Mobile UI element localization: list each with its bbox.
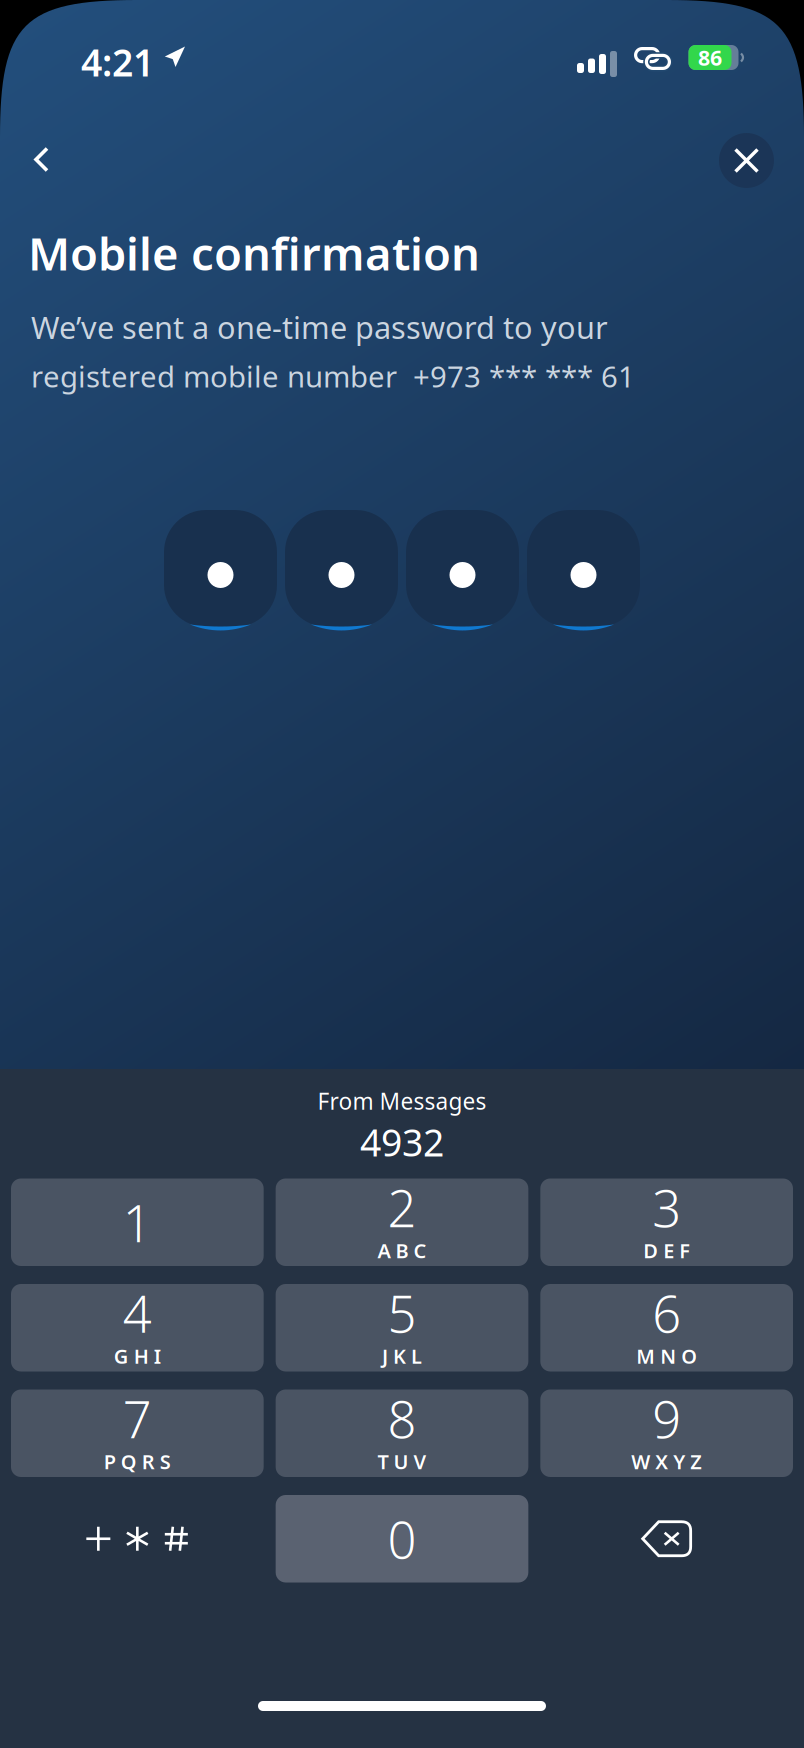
button[interactable]: 0 (276, 1495, 528, 1582)
button[interactable]: 2 (276, 1178, 528, 1266)
button[interactable]: Close (719, 133, 774, 188)
staticText: 4 (123, 1279, 152, 1347)
button[interactable]: Back (14, 132, 70, 188)
staticText: M N O (636, 1343, 697, 1369)
button[interactable]: 3 (540, 1178, 793, 1266)
staticText: T U V (377, 1448, 426, 1475)
staticText: 2 (387, 1174, 416, 1241)
button[interactable]: 7 (11, 1389, 264, 1477)
staticText: 4932 (360, 1117, 444, 1167)
staticText: From Messages (317, 1086, 486, 1116)
staticText: G H I (114, 1343, 161, 1369)
staticText: 5 (387, 1279, 416, 1347)
button[interactable]: 6 (540, 1284, 793, 1371)
staticText: 86 (698, 43, 722, 72)
staticText: We’ve sent a one-time password to your (31, 307, 608, 347)
button[interactable]: 1 (11, 1178, 264, 1266)
staticText: 4:21 (81, 37, 154, 87)
button[interactable]: Symbols (11, 1495, 264, 1582)
staticText: P Q R S (104, 1448, 171, 1475)
button[interactable]: 9 (540, 1389, 793, 1477)
staticText: 8 (387, 1385, 416, 1452)
staticText: 7 (123, 1385, 152, 1452)
button[interactable]: Delete (540, 1495, 793, 1582)
staticText: 9 (652, 1385, 681, 1452)
staticText: registered mobile number +973 *** *** 61 (31, 356, 635, 395)
staticText: J K L (382, 1343, 422, 1369)
button[interactable]: 8 (276, 1389, 528, 1477)
button[interactable]: 5 (276, 1284, 528, 1371)
staticText: 0 (387, 1505, 416, 1573)
staticText: A B C (377, 1237, 426, 1264)
staticText: 6 (652, 1279, 681, 1347)
staticText: 3 (652, 1174, 681, 1241)
staticText: Mobile confirmation (28, 223, 480, 283)
staticText: W X Y Z (631, 1448, 702, 1475)
staticText: D E F (643, 1237, 690, 1264)
button[interactable]: 4 (11, 1284, 264, 1371)
staticText: 1 (123, 1189, 152, 1256)
